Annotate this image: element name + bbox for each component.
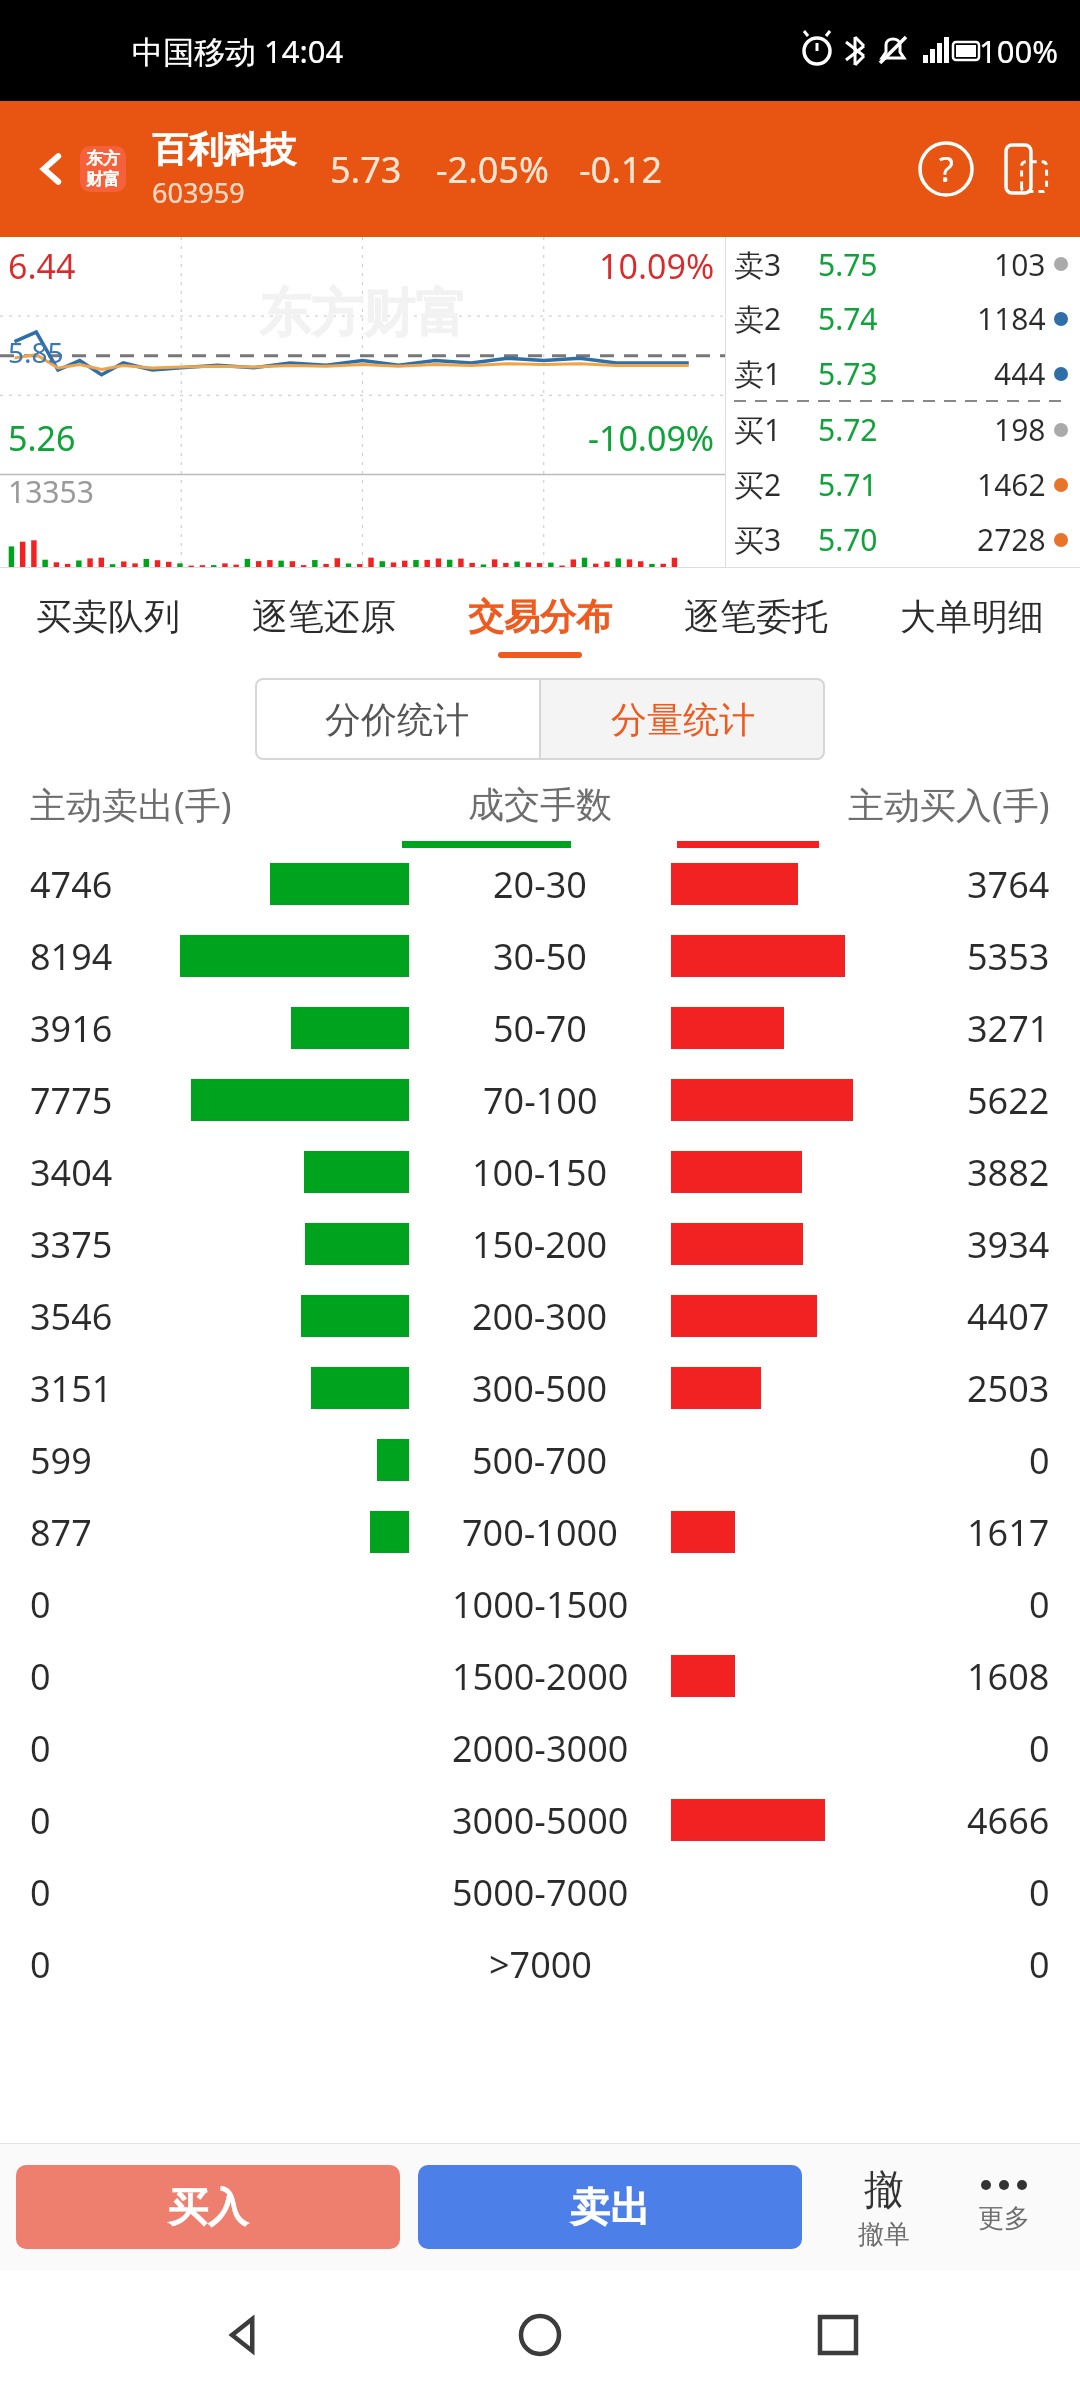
staticText: 买入	[168, 2182, 248, 2232]
button[interactable]: 交易分布	[432, 568, 648, 664]
staticText: 4666	[967, 1796, 1050, 1845]
staticText: 百利科技	[152, 127, 296, 172]
button[interactable]: 分价统计	[255, 678, 539, 760]
staticText: 70-100	[483, 1076, 598, 1125]
button[interactable]: 买3	[734, 512, 1068, 567]
staticText: 198	[994, 409, 1046, 450]
button[interactable]: 3546	[30, 1280, 1050, 1352]
button[interactable]: 8194	[30, 920, 1050, 992]
button[interactable]: Home	[485, 2280, 595, 2390]
staticText: 东方	[86, 148, 120, 169]
staticText: 3764	[967, 860, 1050, 909]
staticText: 150-200	[472, 1220, 608, 1269]
staticText: 3546	[30, 1292, 113, 1341]
button[interactable]: 买卖队列	[0, 568, 216, 664]
button[interactable]: 4746	[30, 848, 1050, 920]
button[interactable]: 0	[30, 1568, 1050, 1640]
button[interactable]: 3375	[30, 1208, 1050, 1280]
staticText: 4746	[30, 860, 113, 909]
button[interactable]: 逐笔委托	[648, 568, 864, 664]
staticText: 300-500	[472, 1364, 608, 1413]
button[interactable]: 大单明细	[864, 568, 1080, 664]
staticText: 买3	[734, 519, 782, 560]
staticText: 3000-5000	[452, 1796, 629, 1845]
staticText: 买1	[734, 409, 782, 450]
button[interactable]: 3151	[30, 1352, 1050, 1424]
staticText: 0	[30, 1940, 51, 1989]
button[interactable]: Back	[188, 2280, 298, 2390]
staticText: 444	[994, 353, 1046, 394]
staticText: 877	[30, 1508, 92, 1557]
staticText: 卖2	[734, 298, 782, 339]
button[interactable]: 0	[30, 1784, 1050, 1856]
button[interactable]: 3404	[30, 1136, 1050, 1208]
staticText: 0	[30, 1724, 51, 1773]
staticText: 0	[1029, 1724, 1050, 1773]
button[interactable]: More	[992, 137, 1056, 201]
staticText: 成交手数	[468, 782, 612, 827]
button[interactable]: 877	[30, 1496, 1050, 1568]
staticText: -0.12	[579, 145, 663, 194]
button[interactable]: 599	[30, 1424, 1050, 1496]
staticText: 30-50	[493, 932, 587, 981]
staticText: 1000-1500	[452, 1580, 629, 1629]
staticText: 13353	[8, 471, 94, 512]
staticText: 大单明细	[900, 594, 1044, 639]
staticText: 5.73	[330, 145, 402, 194]
button[interactable]: Help	[914, 137, 978, 201]
button[interactable]: 0	[30, 1712, 1050, 1784]
button[interactable]: 3916	[30, 992, 1050, 1064]
button[interactable]: 0	[30, 1640, 1050, 1712]
staticText: ?	[939, 146, 954, 192]
button[interactable]: 买2	[734, 457, 1068, 512]
staticText: 700-1000	[462, 1508, 618, 1557]
button[interactable]: 7775	[30, 1064, 1050, 1136]
staticText: 0	[1029, 1436, 1050, 1485]
button[interactable]: Recents	[783, 2280, 893, 2390]
button[interactable]: 分量统计	[541, 678, 825, 760]
button[interactable]: 卖1	[734, 346, 1068, 401]
staticText: 0	[30, 1796, 51, 1845]
staticText: 逐笔还原	[252, 594, 396, 639]
staticText: 5.26	[8, 415, 76, 461]
staticText: 599	[30, 1436, 92, 1485]
button[interactable]: 东方财富	[80, 146, 126, 192]
staticText: 1617	[967, 1508, 1050, 1557]
staticText: 3375	[30, 1220, 113, 1269]
button[interactable]: 卖2	[734, 291, 1068, 346]
staticText: 103	[994, 244, 1046, 285]
button[interactable]: 逐笔还原	[216, 568, 432, 664]
staticText: 2000-3000	[452, 1724, 629, 1773]
staticText: 卖1	[734, 353, 782, 394]
staticText: >7000	[489, 1940, 592, 1989]
staticText: 主动卖出(手)	[30, 780, 232, 829]
button[interactable]: 0	[30, 1928, 1050, 2000]
staticText: 财富	[86, 169, 120, 190]
button[interactable]: 撤	[824, 2144, 944, 2270]
staticText: 500-700	[472, 1436, 608, 1485]
staticText: 5.85	[8, 333, 64, 371]
staticText: 0	[30, 1868, 51, 1917]
staticText: 5622	[967, 1076, 1050, 1125]
staticText: 5.70	[818, 519, 878, 560]
button[interactable]: 卖3	[734, 237, 1068, 291]
staticText: 东方财富	[259, 281, 467, 347]
button[interactable]: 更多	[944, 2144, 1064, 2270]
staticText: 0	[1029, 1940, 1050, 1989]
button[interactable]: 卖出	[418, 2165, 802, 2249]
staticText: 撤单	[858, 2218, 910, 2251]
staticText: 5000-7000	[452, 1868, 629, 1917]
staticText: 分量统计	[611, 697, 755, 742]
button[interactable]: 买1	[734, 402, 1068, 457]
staticText: 卖3	[734, 244, 782, 285]
button[interactable]: 买入	[16, 2165, 400, 2249]
staticText: 10.09%	[599, 243, 715, 289]
button[interactable]: Back	[24, 142, 78, 196]
staticText: 20-30	[493, 860, 587, 909]
button[interactable]: 0	[30, 1856, 1050, 1928]
staticText: 2728	[977, 519, 1046, 560]
staticText: 5.74	[818, 298, 878, 339]
staticText: 3271	[967, 1004, 1050, 1053]
staticText: 卖出	[570, 2182, 650, 2232]
staticText: 5.75	[818, 244, 878, 285]
